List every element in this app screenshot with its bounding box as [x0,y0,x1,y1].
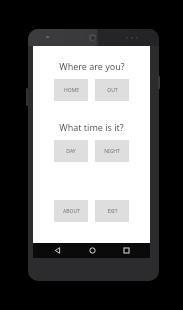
staticText: ABOUT [63,208,80,215]
staticText: OUT [107,87,118,94]
staticText: EXIT [107,208,118,215]
button[interactable]: Home [81,243,103,258]
staticText: HOME [64,87,79,94]
staticText: Where are you? [59,60,125,72]
button[interactable]: ABOUT [54,200,88,222]
button[interactable]: EXIT [95,200,129,222]
button[interactable]: NIGHT [95,140,129,162]
staticText: NIGHT [104,148,120,155]
button[interactable]: HOME [54,79,88,101]
staticText: What time is it? [59,121,124,133]
button[interactable]: DAY [54,140,88,162]
staticText: DAY [66,148,76,155]
button[interactable]: Recent apps [115,243,137,258]
button[interactable]: OUT [95,79,129,101]
button[interactable]: Back [46,243,68,258]
